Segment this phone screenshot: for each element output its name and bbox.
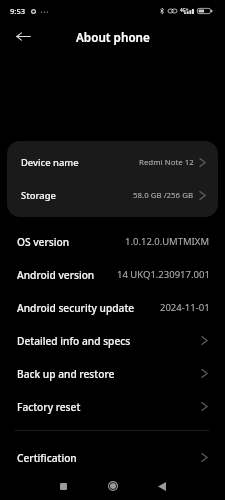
staticText: About phone [76, 29, 150, 45]
button[interactable]: Recent apps [38, 472, 88, 500]
staticText: OS version [17, 235, 70, 249]
button[interactable]: OS version [0, 225, 225, 258]
staticText: Device name [21, 156, 79, 169]
staticText: Detailed info and specs [17, 334, 131, 348]
staticText: 4G+ [180, 7, 189, 13]
button[interactable]: Detailed info and specs [0, 324, 225, 357]
button[interactable]: Factory reset [0, 390, 225, 423]
staticText: Factory reset [17, 400, 81, 414]
staticText: 58.0 GB /256 GB [133, 190, 194, 201]
button[interactable]: Device name [7, 146, 218, 179]
button[interactable]: Back [138, 472, 188, 500]
button[interactable]: Certification [0, 441, 225, 474]
button[interactable]: Back up and restore [0, 357, 225, 390]
staticText: 9:53 [10, 6, 26, 16]
staticText: Android version [17, 268, 95, 282]
button[interactable]: Home [88, 472, 138, 500]
staticText: Certification [17, 451, 77, 465]
staticText: 2024-11-01 [160, 301, 210, 314]
staticText: Android security update [17, 301, 135, 315]
staticText: Back up and restore [17, 367, 115, 381]
button[interactable]: Storage [7, 179, 218, 212]
button[interactable]: Navigate up [9, 22, 38, 51]
staticText: 1.0.12.0.UMTMIXM [125, 235, 210, 248]
staticText: Redmi Note 12 [139, 157, 194, 168]
button[interactable]: Android security update [0, 291, 225, 324]
staticText: 14 UKQ1.230917.001 [117, 268, 210, 281]
staticText: Storage [21, 189, 56, 202]
button[interactable]: Android version [0, 258, 225, 291]
